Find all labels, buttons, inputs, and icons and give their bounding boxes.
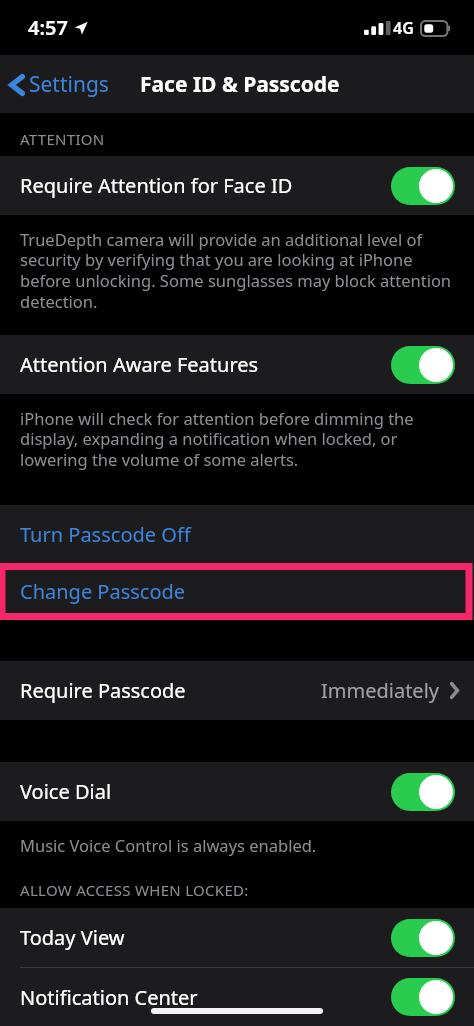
button[interactable]: Notification Center <box>0 968 474 1026</box>
staticText: 4:57 <box>28 14 68 41</box>
staticText: Voice Dial <box>20 778 391 805</box>
staticText: iPhone will check for attention before d… <box>20 407 452 471</box>
staticText: ALLOW ACCESS WHEN LOCKED: <box>20 880 249 900</box>
button[interactable]: Toggle on <box>391 773 455 811</box>
staticText: Turn Passcode Off <box>20 521 191 548</box>
button[interactable]: Toggle on <box>391 978 455 1016</box>
button[interactable]: Toggle on <box>391 346 455 384</box>
staticText: 4G <box>393 17 414 39</box>
staticText: Change Passcode <box>20 578 186 605</box>
button[interactable]: Change Passcode <box>0 563 474 620</box>
button[interactable]: Voice Dial <box>0 762 474 821</box>
staticText: Face ID & Passcode <box>140 70 340 99</box>
button[interactable]: Toggle on <box>391 167 455 205</box>
staticText: Require Passcode <box>20 677 186 704</box>
button[interactable]: Toggle on <box>391 919 455 957</box>
staticText: ATTENTION <box>20 129 105 149</box>
button[interactable]: Turn Passcode Off <box>0 505 474 563</box>
staticText: TrueDepth camera will provide an additio… <box>20 228 452 313</box>
button[interactable]: Require Attention for Face ID <box>0 156 474 215</box>
staticText: Require Attention for Face ID <box>20 172 391 199</box>
staticText: Notification Center <box>20 984 391 1011</box>
button[interactable]: Attention Aware Features <box>0 335 474 394</box>
staticText: Today View <box>20 924 391 951</box>
staticText: Attention Aware Features <box>20 351 391 378</box>
button[interactable]: Require Passcode <box>0 661 474 720</box>
staticText: Settings <box>29 70 109 99</box>
button[interactable]: Settings <box>0 64 117 105</box>
staticText: Immediately <box>321 677 439 704</box>
button[interactable]: Today View <box>0 908 474 967</box>
staticText: Music Voice Control is always enabled. <box>20 834 317 856</box>
